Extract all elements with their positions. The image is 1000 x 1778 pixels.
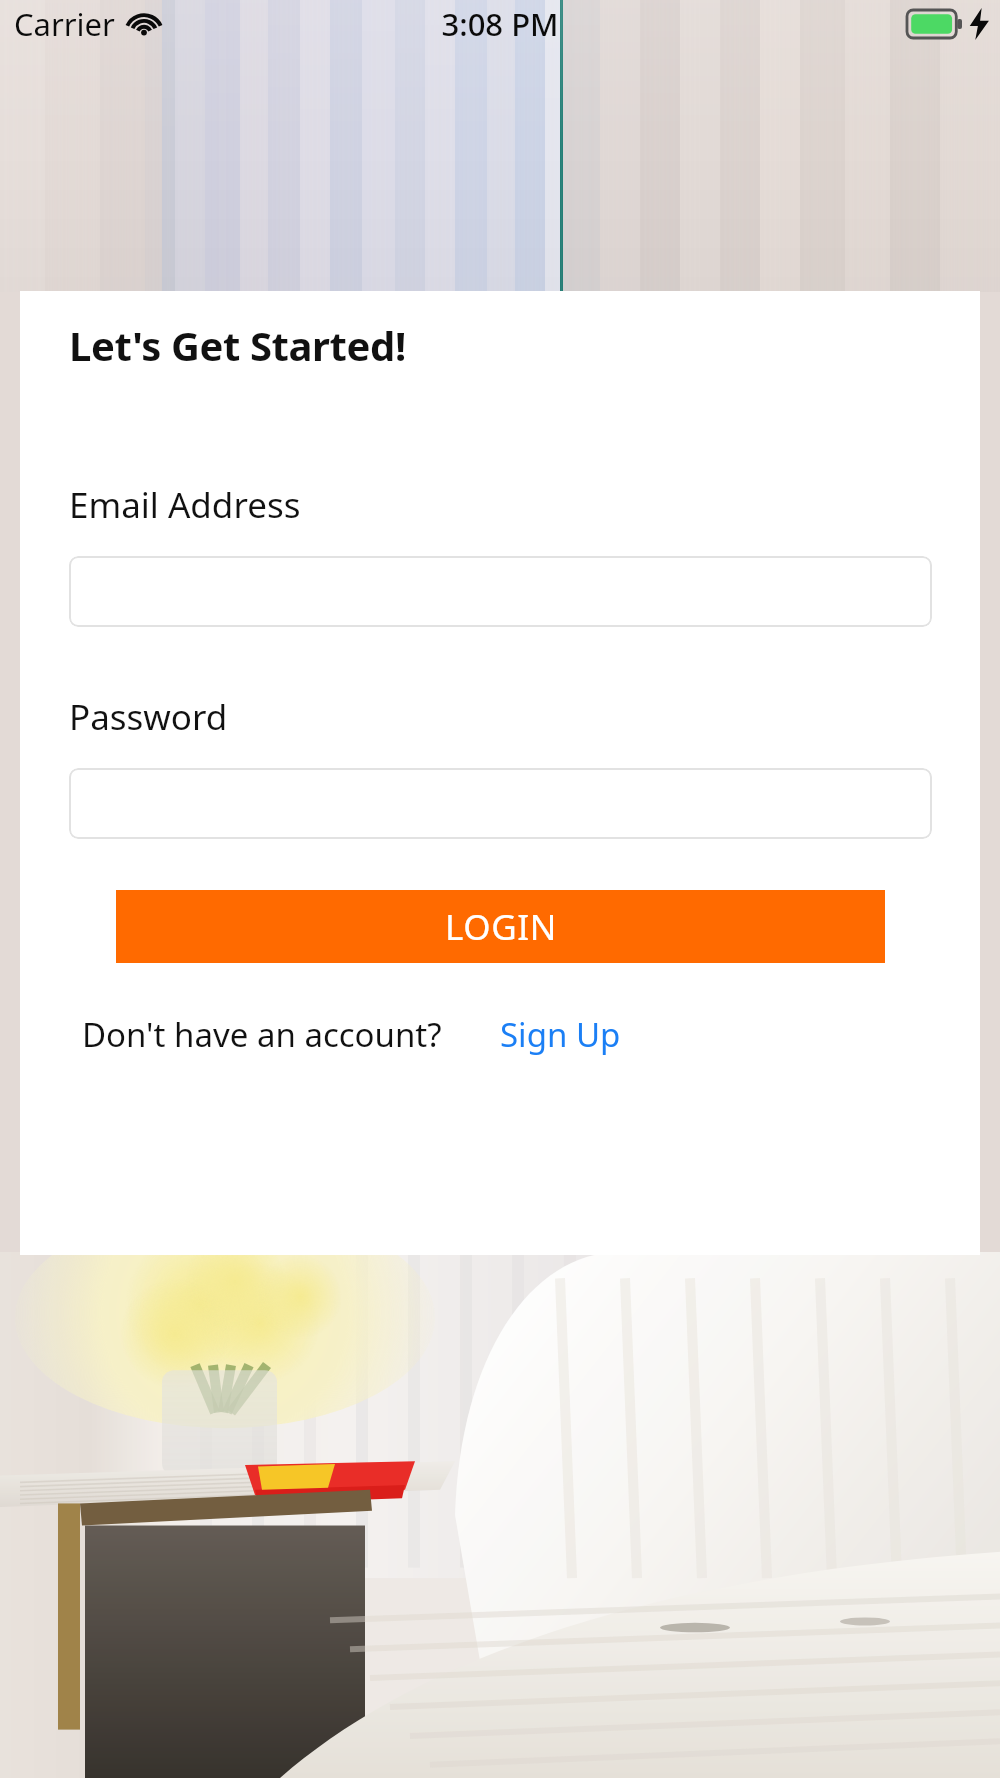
button[interactable]: LOGIN	[116, 890, 885, 963]
staticText: Let's Get Started!	[69, 318, 406, 372]
staticText: Sign Up	[500, 1012, 621, 1057]
staticText: 3:08 PM	[441, 3, 559, 45]
staticText: Email Address	[69, 481, 301, 529]
staticText: LOGIN	[445, 903, 557, 951]
button[interactable]	[69, 768, 932, 839]
button[interactable]: Sign Up	[500, 1012, 621, 1057]
staticText: Password	[69, 693, 228, 741]
button[interactable]	[69, 556, 932, 627]
staticText: Carrier	[14, 3, 115, 45]
staticText: Don't have an account?	[82, 1012, 442, 1057]
